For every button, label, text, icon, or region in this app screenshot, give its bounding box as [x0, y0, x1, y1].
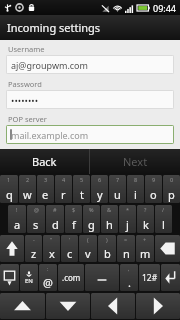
staticText: 0: [170, 176, 174, 183]
button[interactable]: ': [61, 235, 78, 262]
staticText: -: [33, 236, 35, 243]
staticText: 7: [116, 176, 120, 183]
button[interactable]: Back: [0, 149, 89, 174]
button[interactable]: ": [43, 235, 60, 262]
button[interactable]: ): [98, 235, 116, 262]
button[interactable]: ••••••••: [6, 90, 174, 109]
staticText: w: [23, 187, 32, 202]
staticText: ": [50, 236, 53, 243]
staticText: l: [162, 217, 165, 232]
staticText: Password: [8, 79, 42, 89]
staticText: m: [140, 246, 151, 261]
button[interactable]: =: [117, 235, 135, 262]
button[interactable]: 8: [127, 175, 144, 203]
button[interactable]: !: [8, 205, 26, 233]
staticText: POP server: [8, 114, 47, 124]
button[interactable]: Hide keyboard: [0, 264, 19, 291]
button[interactable]: Down: [46, 293, 90, 319]
staticText: 2: [26, 176, 30, 183]
staticText: b: [104, 246, 111, 261]
staticText: o: [150, 187, 157, 202]
button[interactable]: &: [101, 205, 118, 233]
button[interactable]: aj@groupwm.com: [6, 55, 174, 74]
button[interactable]: $: [65, 205, 82, 233]
button[interactable]: .com: [58, 264, 84, 291]
staticText: ••••••••: [11, 94, 39, 106]
button[interactable]: @: [27, 205, 45, 233]
staticText: 12#: [142, 272, 158, 284]
button[interactable]: (: [79, 235, 97, 262]
button[interactable]: 7: [109, 175, 126, 203]
button[interactable]: 1: [0, 175, 18, 203]
staticText: t: [80, 187, 84, 202]
button[interactable]: ,: [120, 264, 138, 291]
button[interactable]: 2: [19, 175, 36, 203]
staticText: EN: [25, 277, 33, 285]
button[interactable]: Space: [85, 264, 119, 291]
button[interactable]: Up: [0, 293, 45, 319]
staticText: 9: [152, 176, 156, 183]
staticText: s: [33, 217, 39, 232]
button[interactable]: -: [25, 235, 42, 262]
staticText: &: [107, 206, 112, 213]
staticText: n: [123, 246, 130, 261]
button[interactable]: :: [39, 264, 57, 291]
staticText: Username: [8, 44, 45, 54]
staticText: 8: [134, 176, 138, 183]
staticText: mail.example.com: [11, 129, 89, 141]
staticText: (: [87, 236, 89, 243]
staticText: Next: [123, 154, 148, 169]
staticText: 4: [62, 176, 66, 183]
staticText: e: [42, 187, 49, 202]
staticText: z: [31, 246, 37, 261]
staticText: ): [106, 236, 108, 243]
staticText: $: [72, 206, 76, 213]
staticText: r: [61, 187, 66, 202]
button[interactable]: %: [83, 205, 100, 233]
staticText: d: [52, 217, 59, 232]
staticText: .: [128, 275, 131, 290]
staticText: :: [47, 265, 49, 272]
button[interactable]: #: [46, 205, 64, 233]
button[interactable]: 4: [55, 175, 72, 203]
staticText: *: [126, 206, 130, 213]
staticText: #: [53, 206, 57, 213]
staticText: 1: [7, 176, 11, 183]
button[interactable]: +: [136, 235, 154, 262]
staticText: +: [143, 236, 147, 243]
staticText: @: [34, 206, 39, 213]
staticText: v: [85, 246, 91, 261]
staticText: 09:44: [153, 2, 177, 14]
staticText: h: [106, 217, 113, 232]
button[interactable]: mail.example.com: [6, 125, 174, 144]
staticText: c: [67, 246, 73, 261]
button[interactable]: 5: [73, 175, 90, 203]
staticText: f: [72, 217, 76, 232]
button[interactable]: Backspace: [155, 235, 180, 262]
button[interactable]: Shift: [0, 235, 24, 262]
button[interactable]: /: [155, 205, 172, 233]
staticText: j: [126, 217, 129, 232]
button[interactable]: Right: [136, 293, 180, 319]
staticText: Incoming settings: [7, 20, 101, 35]
staticText: 3: [44, 176, 48, 183]
button[interactable]: 0: [163, 175, 180, 203]
button[interactable]: ?: [137, 205, 154, 233]
staticText: aj@groupwm.com: [11, 59, 88, 71]
staticText: ?: [144, 206, 147, 213]
button[interactable]: 9: [145, 175, 162, 203]
staticText: !: [16, 206, 18, 213]
button[interactable]: 12#: [139, 264, 160, 291]
staticText: %: [89, 206, 94, 213]
button[interactable]: 3: [37, 175, 54, 203]
staticText: u: [114, 187, 121, 202]
staticText: q: [6, 187, 13, 202]
staticText: ,: [128, 265, 130, 272]
staticText: 5: [80, 176, 84, 183]
button[interactable]: 6: [91, 175, 108, 203]
button[interactable]: *: [119, 205, 136, 233]
button[interactable]: Enter: [161, 264, 180, 291]
button[interactable]: Next: [90, 149, 180, 174]
button[interactable]: Voice input: [20, 264, 38, 291]
button[interactable]: Left: [91, 293, 135, 319]
